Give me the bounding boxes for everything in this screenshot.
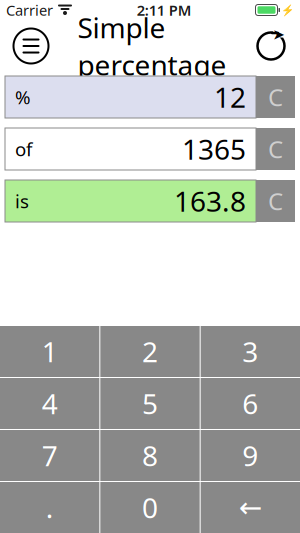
button[interactable]: Menu [9, 24, 53, 68]
staticText: 1 [42, 333, 58, 370]
staticText: 1365 [182, 130, 246, 168]
staticText: 9 [242, 437, 258, 474]
staticText: 6 [242, 385, 258, 422]
staticText: Simple percentage [77, 9, 226, 83]
button[interactable]: Backspace [201, 482, 300, 533]
staticText: of [15, 137, 32, 161]
staticText: 8 [142, 437, 158, 474]
staticText: 4 [42, 385, 58, 422]
button[interactable]: . [0, 482, 99, 533]
staticText: 2:11 PM [137, 0, 192, 20]
staticText: C [268, 185, 283, 217]
staticText: ⚡ [281, 4, 294, 16]
staticText: 12 [214, 78, 246, 116]
button[interactable]: Clear % [256, 76, 295, 118]
button[interactable]: 1 [0, 326, 99, 377]
staticText: ➤ [272, 26, 284, 43]
button[interactable]: 5 [100, 378, 200, 429]
staticText: 3 [242, 333, 258, 370]
button[interactable]: 2 [100, 326, 200, 377]
button[interactable]: 9 [201, 430, 300, 481]
button[interactable]: 6 [201, 378, 300, 429]
staticText: is [15, 189, 29, 213]
staticText: C [268, 81, 283, 113]
staticText: 163.8 [174, 182, 246, 220]
button[interactable]: Clear of [256, 128, 295, 170]
staticText: . [46, 489, 54, 526]
button[interactable]: 0 [100, 482, 200, 533]
staticText: 5 [142, 385, 158, 422]
button[interactable]: 4 [0, 378, 99, 429]
button[interactable]: 3 [201, 326, 300, 377]
button[interactable]: 7 [0, 430, 99, 481]
staticText: % [15, 85, 31, 109]
staticText: ← [239, 492, 262, 523]
staticText: 2 [142, 333, 158, 370]
staticText: 7 [42, 437, 58, 474]
staticText: Carrier [6, 0, 53, 20]
button[interactable]: 8 [100, 430, 200, 481]
button[interactable]: Clear is [256, 180, 295, 222]
staticText: C [268, 133, 283, 165]
staticText: 0 [142, 489, 158, 526]
button[interactable]: Reset [251, 26, 291, 66]
